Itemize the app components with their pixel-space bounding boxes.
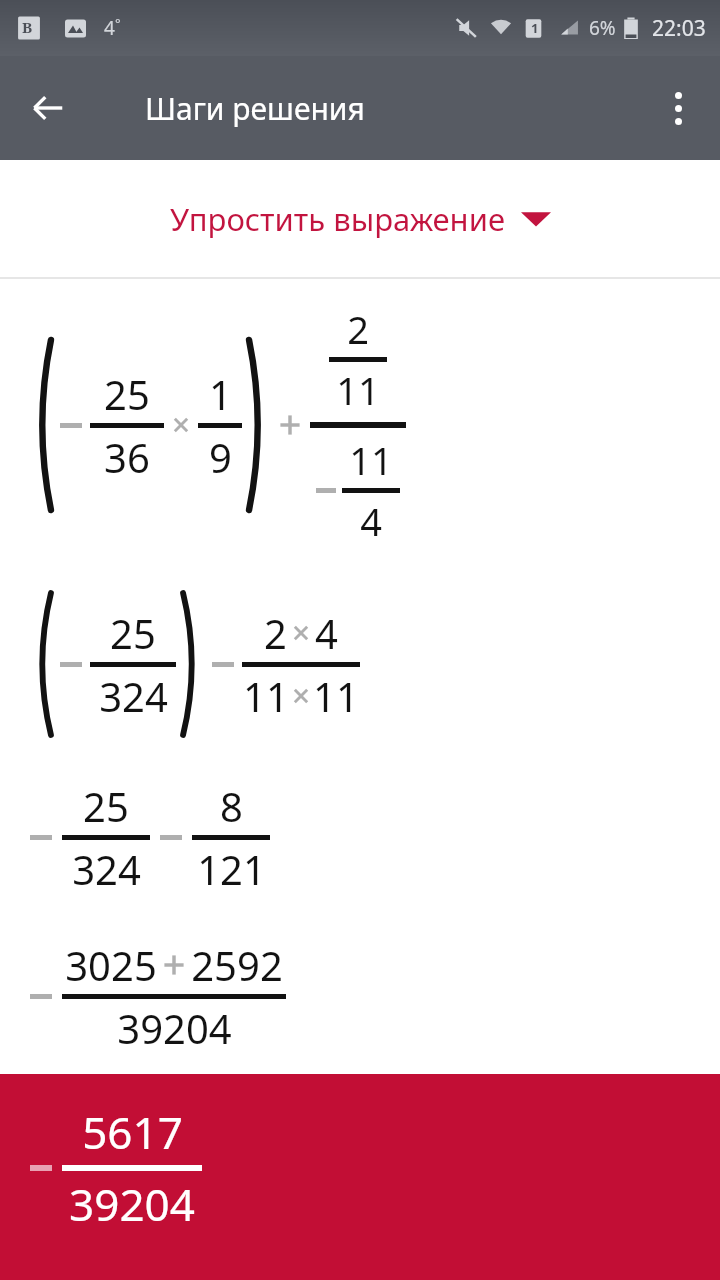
staticText: 25 (110, 606, 156, 660)
staticText: 36 (104, 430, 150, 484)
staticText: 9 (209, 430, 232, 484)
staticText: 25 (83, 779, 129, 833)
staticText: В (22, 17, 33, 37)
staticText: 1 (531, 19, 539, 37)
button[interactable]: Упростить выражение (0, 160, 720, 277)
staticText: 11 (349, 434, 393, 486)
staticText: 2 (347, 303, 369, 355)
staticText: 11 (243, 669, 289, 723)
staticText: 8 (220, 779, 243, 833)
staticText: 324 (99, 669, 168, 723)
staticText: 4 (315, 606, 338, 660)
staticText: 11 (313, 669, 359, 723)
staticText: 2 (264, 606, 287, 660)
staticText: 5617 (82, 1102, 183, 1162)
staticText: Упростить выражение (170, 198, 505, 240)
button[interactable]: Back (14, 74, 82, 142)
staticText: 39204 (117, 1001, 232, 1055)
staticText: 25 (104, 367, 150, 421)
staticText: Шаги решения (145, 88, 365, 129)
staticText: ° (115, 14, 121, 32)
staticText: 121 (197, 842, 266, 896)
staticText: 324 (72, 842, 141, 896)
staticText: 2592 (191, 938, 283, 992)
staticText: 4 (360, 495, 382, 547)
staticText: 22:03 (652, 14, 706, 43)
staticText: 11 (336, 364, 380, 416)
staticText: 6% (589, 15, 616, 41)
staticText: 1 (209, 367, 232, 421)
staticText: 39204 (69, 1174, 195, 1234)
staticText: 3025 (65, 938, 157, 992)
staticText: 4 (104, 15, 115, 41)
button[interactable]: More options (646, 76, 710, 140)
